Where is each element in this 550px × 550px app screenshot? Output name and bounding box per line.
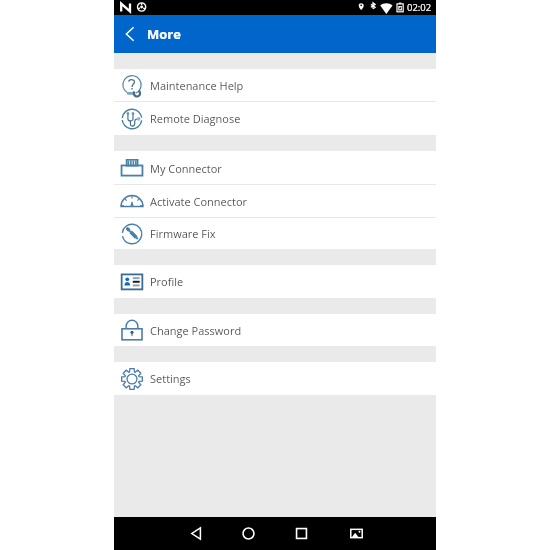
button[interactable]: Maintenance Help [114,69,436,102]
staticText: More [147,25,181,43]
button[interactable]: Change Password [114,314,436,346]
button[interactable]: Activate Connector [114,185,436,218]
button[interactable]: Back [182,517,210,550]
button[interactable]: Recent apps [287,517,315,550]
staticText: Firmware Fix [150,226,216,241]
staticText: Settings [150,371,191,386]
button[interactable]: Profile [114,265,436,298]
button[interactable]: Settings [114,362,436,395]
button[interactable]: Screenshot [342,517,370,550]
button[interactable]: My Connector [114,151,436,185]
button[interactable]: Home [234,517,262,550]
staticText: Profile [150,274,184,289]
staticText: 02:02 [407,1,432,14]
staticText: My Connector [150,161,222,176]
staticText: Change Password [150,323,242,338]
button[interactable]: Firmware Fix [114,218,436,249]
staticText: Activate Connector [150,194,248,209]
staticText: Remote Diagnose [150,111,241,126]
staticText: Maintenance Help [150,78,244,93]
button[interactable]: Remote Diagnose [114,102,436,135]
button[interactable]: Navigate back [115,15,145,53]
